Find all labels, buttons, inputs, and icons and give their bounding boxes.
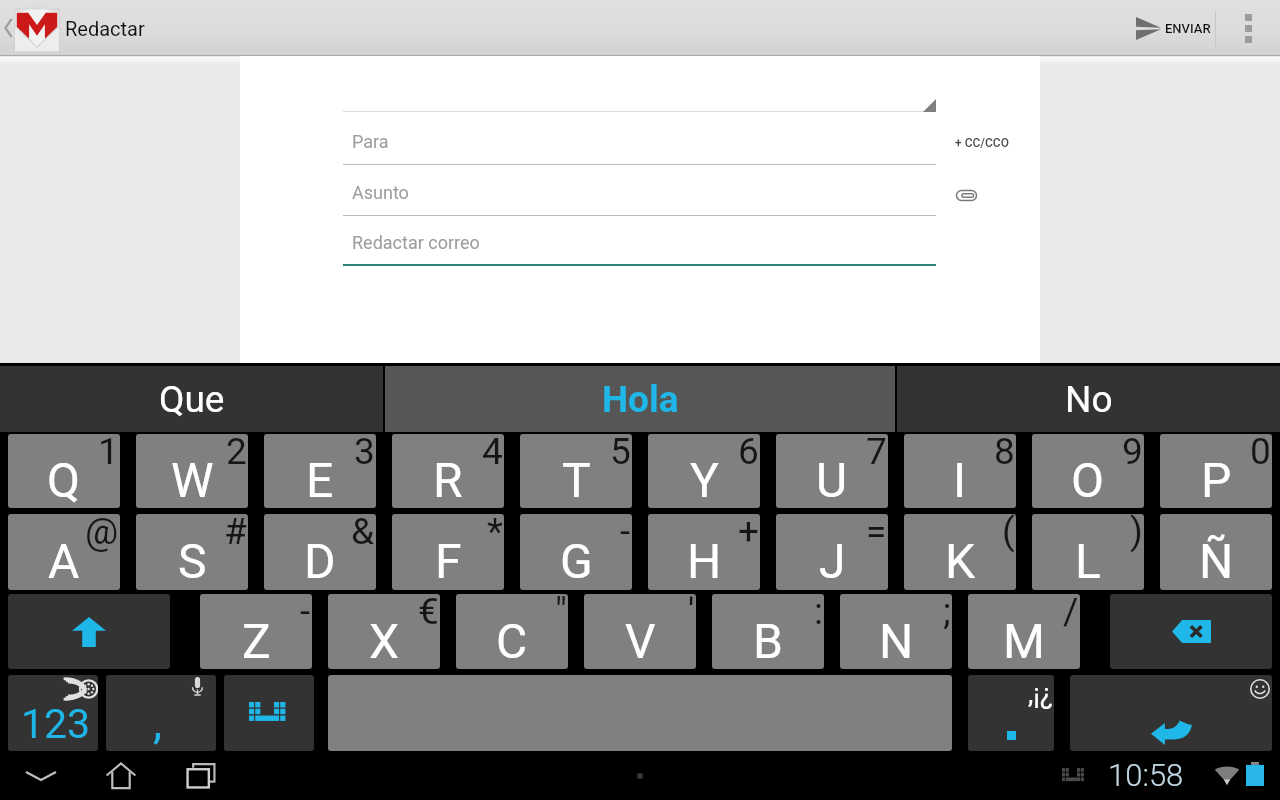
button[interactable]: I (904, 434, 1016, 508)
button[interactable]: S (136, 514, 248, 590)
button[interactable]: L (1032, 514, 1144, 590)
staticText: N (879, 613, 914, 669)
button[interactable]: H (648, 514, 760, 590)
staticText: D (304, 533, 336, 589)
button[interactable]: Q (8, 434, 120, 508)
staticText: 0 (1250, 434, 1271, 473)
staticText: Z (242, 613, 271, 669)
button[interactable]: Key (8, 594, 170, 669)
button[interactable]: + CC/CCO (955, 136, 1009, 150)
button[interactable]: Key (8, 675, 98, 751)
button[interactable]: Redactar correo (343, 224, 936, 266)
button[interactable]: Back (0, 12, 16, 44)
staticText: € (418, 594, 439, 633)
button[interactable]: U (776, 434, 888, 508)
button[interactable]: J (776, 514, 888, 590)
staticText: C (496, 613, 528, 669)
staticText: 9 (1122, 434, 1143, 473)
button[interactable]: Key (106, 675, 216, 751)
staticText: Que (159, 378, 225, 421)
staticText: Hola (602, 378, 679, 421)
staticText: , (153, 695, 163, 749)
staticText: J (819, 533, 846, 589)
button[interactable]: Gmail (15, 4, 59, 52)
button[interactable]: D (264, 514, 376, 590)
staticText: ) (1130, 514, 1143, 553)
staticText: / (1063, 594, 1079, 633)
button[interactable]: Home (90, 752, 152, 800)
button[interactable]: More options (1216, 0, 1280, 56)
staticText: & (351, 514, 375, 553)
staticText: : (814, 594, 823, 633)
button[interactable]: Recents (170, 752, 232, 800)
staticText: I (953, 452, 967, 508)
staticText: H (687, 533, 722, 589)
button[interactable]: N (840, 594, 952, 669)
button[interactable]: A (8, 514, 120, 590)
button[interactable]: Hide keyboard (10, 752, 72, 800)
button[interactable]: Y (648, 434, 760, 508)
button[interactable]: F (392, 514, 504, 590)
button[interactable]: Hola (385, 366, 895, 432)
button[interactable]: Para (343, 123, 936, 165)
button[interactable]: T (520, 434, 632, 508)
staticText: 1 (98, 434, 119, 473)
button[interactable]: Ñ (1160, 514, 1272, 590)
staticText: ' (688, 594, 695, 633)
button[interactable]: W (136, 434, 248, 508)
staticText: B (753, 613, 783, 669)
button[interactable]: O (1032, 434, 1144, 508)
staticText: 7 (866, 434, 887, 473)
staticText: = (866, 514, 887, 553)
button[interactable]: No (897, 366, 1280, 432)
staticText: - (300, 594, 311, 633)
button[interactable]: C (456, 594, 568, 669)
staticText: 123 (21, 700, 91, 748)
button[interactable]: Key (1070, 675, 1272, 751)
staticText: L (1075, 533, 1101, 589)
staticText: Redactar (65, 17, 145, 40)
staticText: 8 (994, 434, 1015, 473)
button[interactable]: K (904, 514, 1016, 590)
staticText: - (620, 514, 631, 553)
button[interactable]: Key (224, 675, 314, 751)
staticText: 4 (482, 434, 503, 473)
staticText: ; (943, 594, 951, 633)
staticText: Asunto (352, 182, 409, 203)
staticText: # (224, 514, 247, 553)
button[interactable]: ENVIAR (1136, 0, 1211, 56)
button[interactable]: P (1160, 434, 1272, 508)
button[interactable]: G (520, 514, 632, 590)
staticText: 5 (610, 434, 631, 473)
button[interactable]: Key (968, 675, 1054, 751)
staticText: X (369, 613, 400, 669)
button[interactable]: V (584, 594, 696, 669)
button[interactable]: X (328, 594, 440, 669)
staticText: " (555, 594, 567, 633)
button[interactable]: Key (1110, 594, 1272, 669)
button[interactable]: E (264, 434, 376, 508)
staticText: + (738, 514, 759, 553)
button[interactable]: Attach file (946, 175, 986, 215)
staticText: A (48, 533, 80, 589)
button[interactable]: Que (0, 366, 383, 432)
staticText: ,¡¿ (1028, 678, 1053, 710)
staticText: Y (690, 452, 719, 508)
button[interactable]: M (968, 594, 1080, 669)
staticText: ( (1002, 514, 1015, 553)
staticText: Para (352, 131, 389, 152)
button[interactable]: R (392, 434, 504, 508)
staticText: Redactar correo (352, 232, 480, 253)
staticText: 3 (354, 434, 375, 473)
staticText: V (625, 613, 656, 669)
staticText: P (1201, 452, 1232, 508)
staticText: 2 (226, 434, 247, 473)
staticText: U (816, 452, 848, 508)
button[interactable]: Z (200, 594, 312, 669)
staticText: * (487, 514, 503, 553)
staticText: G (560, 533, 593, 589)
button[interactable]: Asunto (343, 174, 936, 216)
button[interactable]: B (712, 594, 824, 669)
staticText: Q (47, 452, 81, 508)
